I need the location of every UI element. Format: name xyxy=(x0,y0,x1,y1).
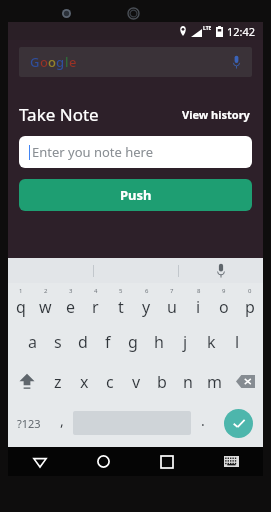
staticText: 9 xyxy=(222,287,226,295)
button[interactable]: k xyxy=(198,322,224,361)
button[interactable]: Switch keyboard xyxy=(199,447,263,476)
button[interactable]: 3 xyxy=(58,283,83,322)
button[interactable]: 7 xyxy=(159,283,185,322)
button[interactable]: Home xyxy=(71,447,135,476)
staticText: m xyxy=(207,371,222,393)
staticText: 3 xyxy=(69,287,73,295)
staticText: G xyxy=(30,53,40,71)
button[interactable]: 6 xyxy=(133,283,159,322)
button[interactable]: d xyxy=(70,322,95,361)
staticText: LTE xyxy=(203,25,212,32)
staticText: Enter you note here xyxy=(32,143,154,161)
button[interactable]: Push xyxy=(19,179,252,211)
staticText: n xyxy=(183,371,193,393)
button[interactable]: a xyxy=(20,322,45,361)
staticText: k xyxy=(207,331,216,353)
staticText: . xyxy=(201,411,205,430)
staticText: h xyxy=(154,331,164,353)
staticText: Push xyxy=(120,186,152,204)
button[interactable]: , xyxy=(50,402,73,444)
staticText: e xyxy=(66,296,76,318)
button[interactable]: x xyxy=(71,361,97,402)
staticText: Take Note xyxy=(19,103,99,126)
button[interactable]: b xyxy=(149,361,175,402)
button[interactable]: Voice search xyxy=(232,55,241,69)
staticText: p xyxy=(245,296,255,318)
staticText: ?123 xyxy=(17,416,41,431)
staticText: 1 xyxy=(19,287,23,295)
button[interactable]: Delete xyxy=(227,361,263,402)
staticText: u xyxy=(167,296,177,318)
button[interactable]: 0 xyxy=(237,283,263,322)
button[interactable]: l xyxy=(224,322,250,361)
staticText: x xyxy=(80,371,89,393)
button[interactable]: n xyxy=(175,361,201,402)
staticText: 6 xyxy=(145,287,149,295)
button[interactable]: s xyxy=(45,322,70,361)
staticText: j xyxy=(183,331,188,353)
button[interactable]: G xyxy=(19,47,252,77)
button[interactable]: g xyxy=(120,322,146,361)
button[interactable]: View history xyxy=(180,105,252,124)
button[interactable]: f xyxy=(95,322,120,361)
staticText: t xyxy=(118,296,124,318)
staticText: o xyxy=(48,53,56,71)
staticText: , xyxy=(60,411,64,430)
button[interactable]: z xyxy=(45,361,71,402)
staticText: d xyxy=(78,331,88,353)
staticText: b xyxy=(157,371,167,393)
staticText: 7 xyxy=(170,287,174,295)
staticText: r xyxy=(92,296,99,318)
button[interactable]: v xyxy=(123,361,149,402)
staticText: y xyxy=(142,296,151,318)
staticText: 4 xyxy=(94,287,98,295)
staticText: g xyxy=(128,331,138,353)
button[interactable]: Shift xyxy=(8,361,45,402)
button[interactable]: 2 xyxy=(33,283,58,322)
staticText: e xyxy=(69,53,77,71)
button[interactable]: 8 xyxy=(185,283,211,322)
staticText: i xyxy=(196,296,201,318)
staticText: 12:42 xyxy=(227,24,256,39)
button[interactable]: ?123 xyxy=(8,402,50,444)
button[interactable]: Enter xyxy=(214,402,263,444)
button[interactable]: . xyxy=(191,402,214,444)
staticText: w xyxy=(39,296,52,318)
button[interactable]: 5 xyxy=(108,283,133,322)
staticText: l xyxy=(65,53,69,71)
button[interactable]: h xyxy=(146,322,172,361)
button[interactable]: 4 xyxy=(83,283,108,322)
button[interactable]: j xyxy=(172,322,198,361)
staticText: 5 xyxy=(119,287,123,295)
staticText: f xyxy=(105,331,111,353)
staticText: 0 xyxy=(248,287,252,295)
staticText: 2 xyxy=(44,287,48,295)
staticText: 8 xyxy=(197,287,201,295)
staticText: v xyxy=(132,371,141,393)
button[interactable]: Recents xyxy=(135,447,199,476)
button[interactable]: Enter you note here xyxy=(19,136,252,168)
button[interactable]: 9 xyxy=(211,283,237,322)
button[interactable]: m xyxy=(201,361,227,402)
staticText: c xyxy=(106,371,114,393)
staticText: g xyxy=(56,53,65,71)
button[interactable]: 1 xyxy=(8,283,33,322)
staticText: s xyxy=(54,331,62,353)
staticText: q xyxy=(16,296,26,318)
staticText: a xyxy=(28,331,37,353)
staticText: l xyxy=(235,331,240,353)
button[interactable]: Voice input xyxy=(179,258,263,283)
staticText: z xyxy=(54,371,62,393)
staticText: o xyxy=(40,53,48,71)
button[interactable]: c xyxy=(97,361,123,402)
staticText: View history xyxy=(182,107,250,122)
button[interactable]: Back xyxy=(8,447,71,476)
staticText: o xyxy=(219,296,229,318)
